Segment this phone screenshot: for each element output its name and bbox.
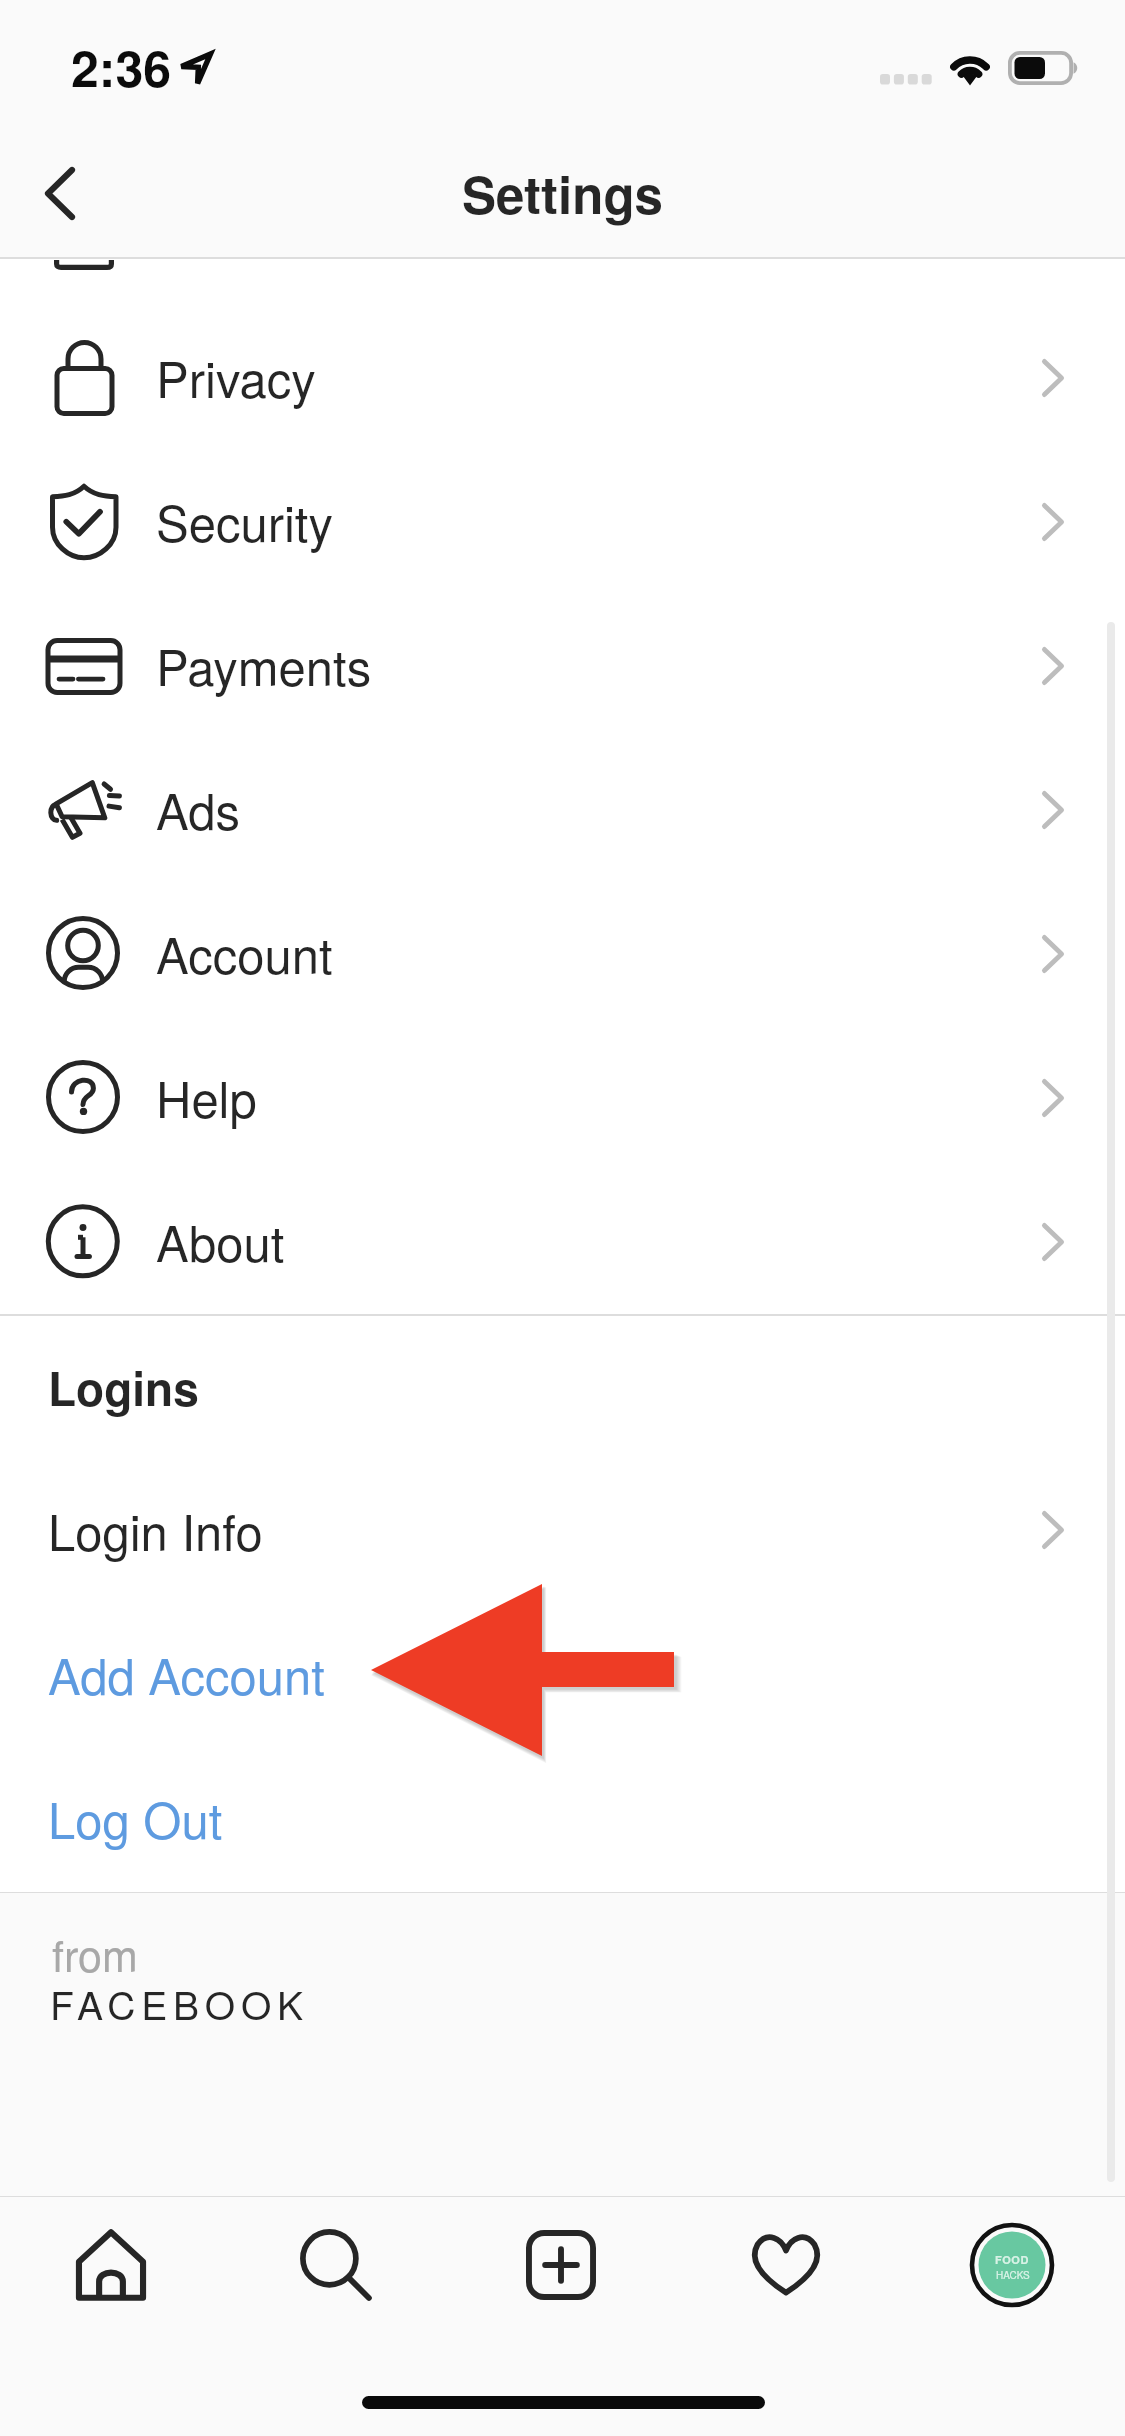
staticText: About bbox=[156, 1206, 285, 1276]
button[interactable]: Add Account bbox=[0, 1603, 1125, 1746]
button[interactable]: Search bbox=[281, 2210, 391, 2320]
button[interactable]: Home bbox=[56, 2210, 166, 2320]
staticText: from bbox=[52, 1923, 138, 1985]
button[interactable]: Privacy bbox=[0, 306, 1125, 450]
button[interactable]: Back bbox=[0, 132, 118, 258]
button[interactable]: Account bbox=[0, 882, 1125, 1026]
staticText: Ads bbox=[156, 774, 240, 844]
staticText: FACEBOOK bbox=[50, 1975, 309, 2031]
button[interactable]: Login Info bbox=[0, 1459, 1125, 1602]
staticText: Account bbox=[156, 918, 333, 988]
button[interactable]: Payments bbox=[0, 594, 1125, 738]
staticText: Help bbox=[156, 1062, 257, 1132]
button[interactable]: About bbox=[0, 1170, 1125, 1314]
staticText: Settings bbox=[462, 157, 663, 230]
button[interactable]: New Post bbox=[506, 2210, 616, 2320]
staticText: Logins bbox=[48, 1354, 199, 1420]
staticText: FOOD bbox=[995, 2252, 1030, 2268]
staticText: Security bbox=[156, 486, 333, 556]
button[interactable]: Log Out bbox=[0, 1747, 1125, 1890]
button[interactable]: Activity bbox=[731, 2210, 841, 2320]
staticText: Payments bbox=[156, 630, 372, 700]
staticText: Privacy bbox=[156, 342, 316, 412]
button[interactable]: Profile bbox=[957, 2210, 1067, 2320]
staticText: Log Out bbox=[48, 1783, 223, 1853]
staticText: HACKS bbox=[996, 2268, 1030, 2282]
staticText: Add Account bbox=[48, 1639, 325, 1709]
button[interactable]: Security bbox=[0, 450, 1125, 594]
staticText: Login Info bbox=[48, 1495, 263, 1565]
button[interactable]: Ads bbox=[0, 738, 1125, 882]
button[interactable]: Help bbox=[0, 1026, 1125, 1170]
staticText: 2:36 bbox=[71, 31, 172, 103]
